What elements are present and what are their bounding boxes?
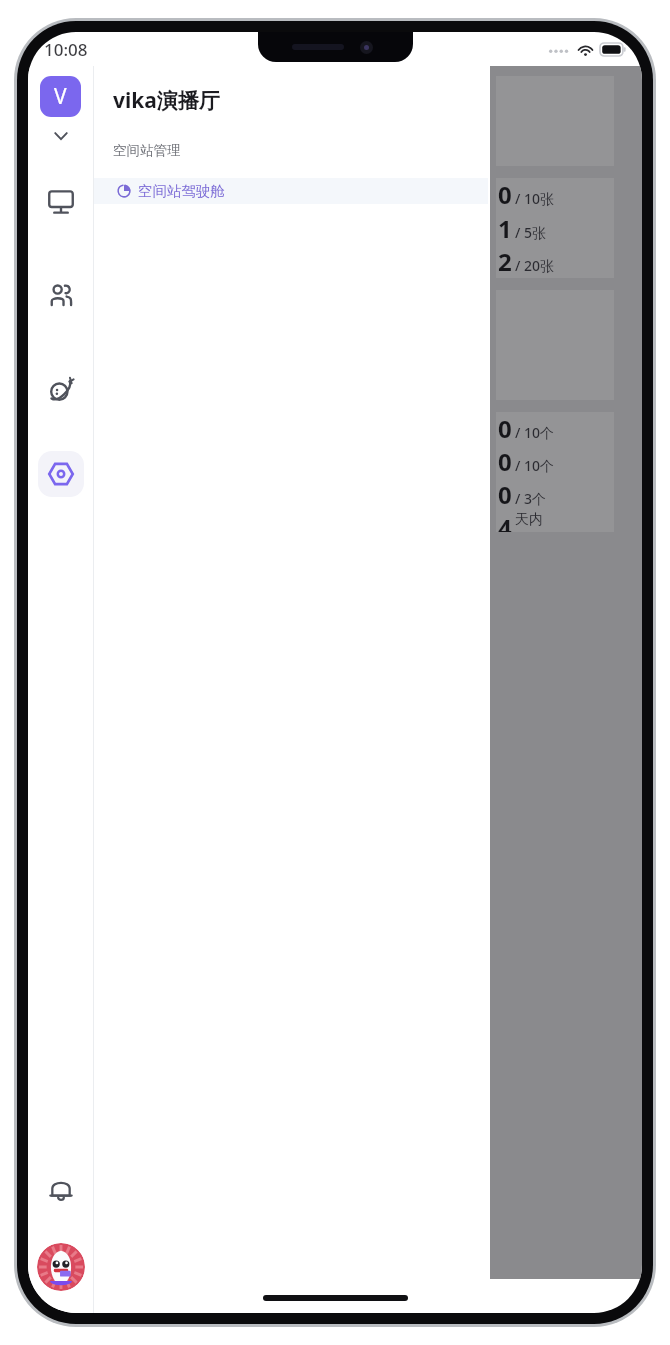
staticText: 空间站驾驶舱 [138,182,225,200]
button[interactable]: Members [38,273,84,319]
button[interactable]: Explore [38,367,84,413]
staticText: / 3个 [515,489,547,508]
staticText: 0 [498,178,512,211]
button[interactable]: Notifications [38,1167,84,1213]
button[interactable]: V [40,76,81,117]
button[interactable]: Space station management [38,451,84,497]
staticText: 10:08 [44,38,88,61]
staticText: V [54,82,67,111]
staticText: / 10张 [515,189,555,208]
staticText: 4 [498,511,512,532]
staticText: 0 [498,478,512,511]
staticText: 2 [498,245,512,278]
button[interactable]: Workbench [38,179,84,225]
button[interactable]: Profile [37,1243,85,1291]
staticText: 空间站管理 [113,142,181,159]
button[interactable]: 空间站驾驶舱 [94,178,488,204]
staticText: / 5张 [515,223,547,242]
staticText: 0 [498,445,512,478]
button[interactable]: Switch space [48,123,74,149]
staticText: / 20张 [515,256,555,275]
staticText: 1 [498,212,512,245]
staticText: / 10个 [515,456,555,475]
staticText: vika演播厅 [113,86,220,115]
staticText: 0 [498,412,512,445]
staticText: 天内 [515,511,543,529]
staticText: / 10个 [515,423,555,442]
